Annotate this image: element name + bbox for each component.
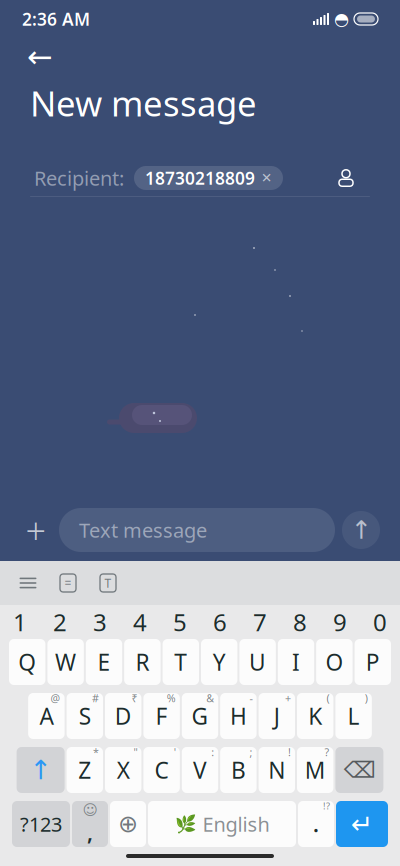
staticText: #	[92, 691, 99, 705]
staticText: J	[274, 701, 280, 731]
button[interactable]: "	[105, 747, 141, 793]
button[interactable]: 8	[280, 605, 320, 639]
staticText: ?	[324, 745, 329, 759]
button[interactable]	[47, 639, 84, 685]
staticText: F	[156, 701, 168, 731]
staticText: 5	[173, 606, 187, 638]
staticText: 2:36 AM	[22, 7, 90, 30]
button[interactable]: +	[259, 693, 295, 739]
button[interactable]: #	[67, 693, 103, 739]
button[interactable]: '	[143, 747, 180, 793]
button[interactable]: Attach	[13, 507, 59, 553]
staticText: L	[348, 701, 360, 731]
button[interactable]: @	[28, 693, 65, 739]
button[interactable]: :	[182, 747, 218, 793]
button[interactable]	[86, 639, 122, 685]
staticText: !?	[323, 800, 330, 812]
button[interactable]: )	[335, 693, 372, 739]
staticText: '	[174, 745, 176, 759]
staticText: New message	[30, 80, 257, 126]
button[interactable]: 2	[40, 605, 80, 639]
button[interactable]: ?	[297, 747, 333, 793]
staticText: +	[25, 506, 46, 554]
button[interactable]	[163, 639, 199, 685]
staticText: Y	[213, 647, 226, 677]
button[interactable]: 0	[360, 605, 400, 639]
staticText: Text message	[79, 517, 207, 543]
staticText: +	[285, 691, 291, 705]
staticText: 7	[253, 606, 267, 638]
staticText: I	[292, 647, 300, 677]
button[interactable]: ;	[220, 747, 257, 793]
button[interactable]: Backspace	[335, 747, 383, 793]
staticText: ⌫	[343, 757, 375, 783]
button[interactable]: 4	[120, 605, 160, 639]
button[interactable]: Change language	[110, 801, 146, 847]
button[interactable]: Text editing	[88, 569, 128, 597]
staticText: )	[365, 691, 368, 705]
button[interactable]: Space	[148, 801, 296, 847]
button[interactable]	[278, 639, 314, 685]
button[interactable]: 3	[80, 605, 120, 639]
button[interactable]	[9, 639, 45, 685]
staticText: :	[211, 745, 214, 759]
staticText: ↑	[350, 516, 371, 544]
button[interactable]	[316, 639, 353, 685]
staticText: 8	[293, 606, 307, 638]
button[interactable]	[239, 639, 276, 685]
staticText: -	[250, 691, 253, 705]
staticText: English	[202, 811, 269, 837]
button[interactable]: 9	[320, 605, 360, 639]
staticText: 2	[53, 606, 67, 638]
button[interactable]: Back	[18, 37, 62, 77]
button[interactable]: %	[143, 693, 180, 739]
staticText: D	[115, 701, 132, 731]
staticText: K	[308, 701, 322, 731]
staticText: 4	[133, 606, 147, 638]
staticText: 1	[13, 606, 27, 638]
staticText: ?123	[20, 811, 62, 837]
staticText: A	[39, 701, 53, 731]
staticText: H	[230, 701, 247, 731]
staticText: C	[155, 755, 169, 785]
button[interactable]: !	[259, 747, 295, 793]
button[interactable]: 5	[160, 605, 200, 639]
staticText: ⊕	[118, 810, 138, 838]
staticText: &	[206, 691, 214, 705]
staticText: 9	[333, 606, 347, 638]
staticText: R	[135, 647, 149, 677]
button[interactable]: *	[67, 747, 103, 793]
staticText: G	[191, 701, 208, 731]
staticText: 18730218809	[145, 166, 255, 189]
button[interactable]: Choose contact	[326, 159, 366, 197]
button[interactable]: ₹	[105, 693, 141, 739]
staticText: (	[326, 691, 329, 705]
button[interactable]: 6	[200, 605, 240, 639]
button[interactable]	[124, 639, 161, 685]
button[interactable]: -	[220, 693, 257, 739]
button[interactable]: Shift	[17, 747, 65, 793]
staticText: ☺	[82, 801, 97, 818]
button[interactable]: 18730218809	[134, 166, 283, 190]
staticText: "	[133, 745, 137, 759]
button[interactable]: Clipboard	[48, 569, 88, 597]
button[interactable]: 1	[0, 605, 40, 639]
button[interactable]: Enter	[336, 801, 388, 847]
button[interactable]: (	[297, 693, 333, 739]
staticText: N	[268, 755, 285, 785]
staticText: .	[313, 810, 319, 838]
button[interactable]: 7	[240, 605, 280, 639]
button[interactable]: Emoji and comma	[72, 801, 108, 847]
button[interactable]	[201, 639, 237, 685]
button[interactable]: &	[182, 693, 218, 739]
button[interactable]	[355, 639, 391, 685]
button[interactable]: Text message	[59, 508, 335, 552]
button[interactable]: ?123	[12, 801, 70, 847]
staticText: O	[325, 647, 343, 677]
staticText: 6	[213, 606, 227, 638]
staticText: 3	[93, 606, 107, 638]
button[interactable]: Keyboard menu	[8, 569, 48, 597]
staticText: !	[288, 745, 291, 759]
button[interactable]: Period	[298, 801, 334, 847]
button[interactable]: Send	[335, 511, 387, 549]
